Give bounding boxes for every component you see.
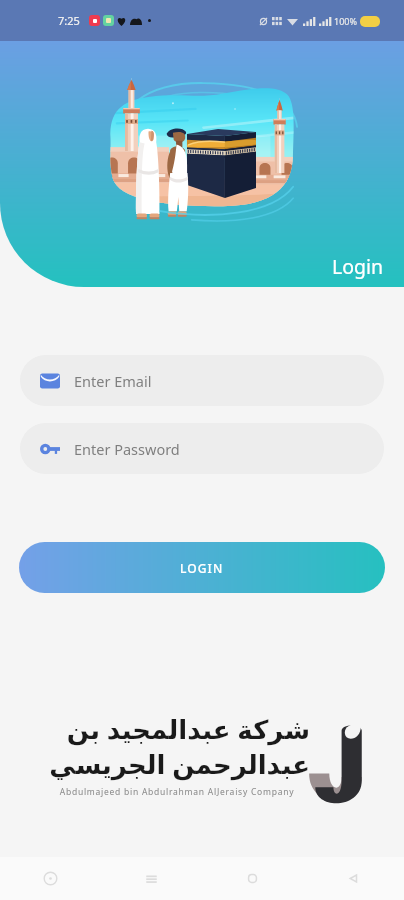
button[interactable]: Enter Email (20, 355, 384, 406)
button[interactable]: LOGIN (19, 542, 385, 593)
staticText: Enter Email (74, 371, 152, 391)
button[interactable]: Assistant (0, 857, 101, 900)
staticText: عبدالرحمن الجريسي (49, 746, 310, 781)
button[interactable]: Enter Password (20, 423, 384, 474)
staticText: Enter Password (74, 439, 180, 459)
staticText: 7:25 (58, 13, 80, 28)
staticText: LOGIN (180, 560, 224, 576)
staticText: شركة عبدالمجيد بن (66, 711, 310, 746)
staticText: 100% (334, 15, 357, 27)
staticText: Login (332, 253, 384, 280)
staticText: Abdulmajeed bin Abdulrahman AlJeraisy Co… (44, 786, 310, 798)
